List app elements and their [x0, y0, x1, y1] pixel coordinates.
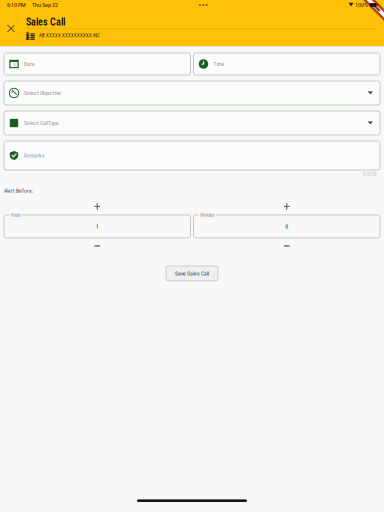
staticText: Alert Before: [4, 188, 33, 194]
staticText: Thu Sep 22 [32, 1, 58, 9]
staticText: Save Sales Call [175, 270, 209, 277]
button[interactable]: Date [4, 53, 190, 75]
staticText: Remarks [24, 152, 45, 159]
button[interactable]: Time [193, 53, 380, 75]
staticText: 0 [285, 223, 288, 230]
button[interactable]: Increase Hours [86, 199, 108, 214]
staticText: 1 [96, 223, 99, 230]
button[interactable]: Decrease Minutes [276, 238, 298, 254]
button[interactable]: Increase Minutes [276, 199, 298, 214]
staticText: 100% [355, 1, 368, 9]
button[interactable]: Save Sales Call [166, 266, 218, 281]
staticText: AB XXXXX XXXXXXXXXX INC [39, 33, 100, 38]
button[interactable]: Decrease Hours [86, 238, 108, 254]
staticText: Select Objective [24, 90, 61, 96]
staticText: 6:10 PM [7, 1, 26, 9]
button[interactable]: Close [3, 20, 19, 36]
button[interactable]: Select CallType [4, 111, 380, 135]
staticText: Minutes [200, 212, 214, 218]
button[interactable]: Remarks [4, 141, 380, 170]
staticText: 0/250 [363, 171, 377, 177]
staticText: Date [24, 61, 35, 67]
button[interactable]: Select Objective [4, 81, 380, 105]
staticText: Time [213, 61, 224, 67]
staticText: Select CallType [24, 120, 59, 126]
staticText: Hours [11, 212, 21, 218]
staticText: Sales Call [26, 16, 65, 28]
